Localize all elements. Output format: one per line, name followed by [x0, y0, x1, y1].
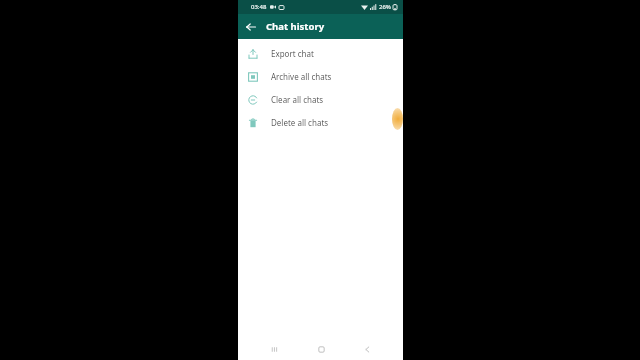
staticText: Export chat: [271, 48, 314, 59]
staticText: Archive all chats: [271, 71, 332, 82]
button[interactable]: Archive all chats: [238, 65, 403, 88]
staticText: 26%: [379, 3, 391, 11]
button[interactable]: Back: [357, 339, 377, 359]
button[interactable]: Recent apps: [264, 339, 284, 359]
button[interactable]: Clear all chats: [238, 88, 403, 111]
button[interactable]: Delete all chats: [238, 111, 403, 134]
button[interactable]: Export chat: [238, 42, 403, 65]
button[interactable]: Home: [311, 339, 331, 359]
staticText: Delete all chats: [271, 117, 329, 128]
staticText: Clear all chats: [271, 94, 324, 105]
staticText: 03:48: [251, 3, 267, 11]
button[interactable]: Back: [242, 18, 260, 36]
staticText: Chat history: [266, 20, 325, 33]
